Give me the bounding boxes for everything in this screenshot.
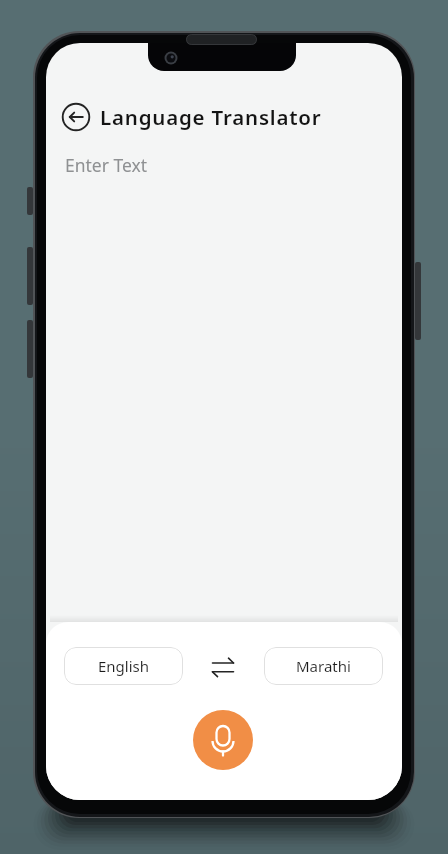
staticText: Marathi [296, 656, 351, 676]
button[interactable] [209, 653, 237, 681]
button[interactable]: English [64, 647, 183, 685]
button[interactable] [62, 103, 90, 131]
button[interactable] [193, 710, 253, 770]
staticText: English [98, 656, 150, 676]
staticText: Language Translator [100, 103, 322, 131]
staticText: Enter Text [65, 153, 148, 177]
button[interactable]: Marathi [264, 647, 383, 685]
